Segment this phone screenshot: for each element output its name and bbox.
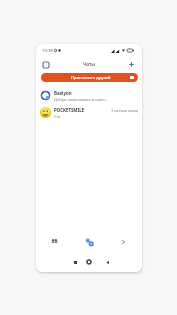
button[interactable]: New chat — [126, 59, 137, 70]
staticText: Чаты — [83, 61, 96, 68]
staticText: 10:18 — [42, 48, 53, 54]
button[interactable]: Contacts — [36, 235, 72, 248]
button[interactable]: Back — [99, 255, 115, 269]
button[interactable]: More — [107, 235, 142, 248]
button[interactable]: Пригласить друзей — [41, 73, 138, 82]
staticText: POCKETSMILE — [54, 107, 85, 113]
staticText: Добро пожаловать в прил… — [54, 97, 108, 102]
button[interactable]: Baxlyon — [36, 87, 142, 104]
button[interactable]: Chats — [72, 235, 107, 248]
button[interactable]: Profile — [39, 59, 50, 70]
button[interactable]: Recents — [67, 255, 83, 269]
button[interactable]: Home — [81, 255, 97, 269]
staticText: Пригласить друзей — [71, 75, 111, 81]
staticText: 3 месяца назад — [111, 108, 138, 113]
staticText: Baxlyon — [54, 90, 72, 96]
button[interactable]: POCKETSMILE — [36, 104, 142, 121]
staticText: Упс — [54, 114, 61, 119]
